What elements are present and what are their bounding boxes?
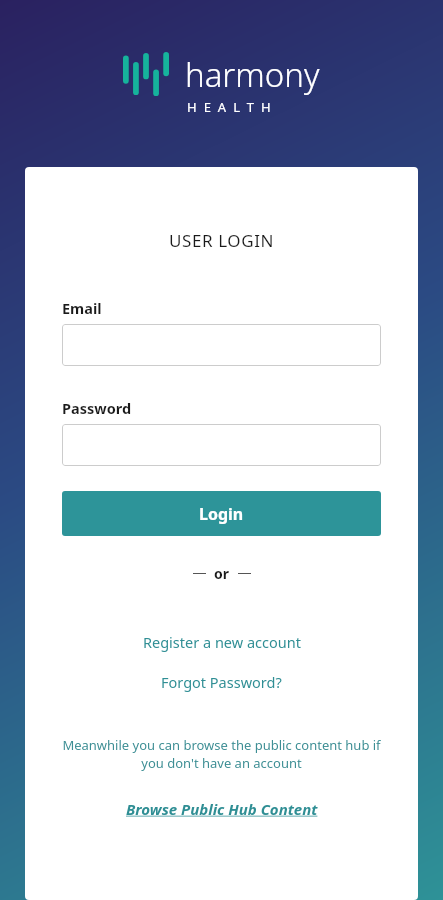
staticText: USER LOGIN [169, 229, 275, 252]
button[interactable]: Text input field [62, 324, 381, 366]
staticText: Email [62, 298, 102, 318]
staticText: HEALTH [187, 98, 278, 116]
staticText: Meanwhile you can browse the public cont… [62, 736, 381, 772]
button[interactable]: Register a new account [143, 632, 301, 652]
staticText: Browse Public Hub Content [126, 799, 318, 819]
button[interactable]: Text input field [62, 424, 381, 466]
staticText: harmony [185, 52, 320, 97]
staticText: Forgot Password? [161, 672, 282, 692]
staticText: Login [199, 503, 244, 525]
button[interactable]: Login [62, 491, 381, 536]
staticText: Register a new account [143, 632, 301, 652]
button[interactable]: Browse Public Hub Content [126, 799, 318, 819]
staticText: or [214, 564, 230, 583]
staticText: Password [62, 398, 132, 418]
button[interactable]: Forgot Password? [161, 672, 282, 692]
